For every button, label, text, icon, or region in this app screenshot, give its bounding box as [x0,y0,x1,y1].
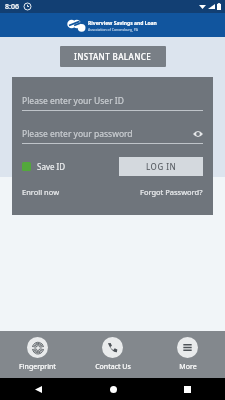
staticText: Contact Us [95,362,131,372]
staticText: Enroll now [22,187,60,197]
staticText: Fingerprint [19,362,56,372]
staticText: 8:06 [5,2,19,12]
button[interactable]: LOG IN [119,157,203,176]
button[interactable]: More [150,331,225,378]
staticText: Please enter your password [22,128,133,140]
button[interactable]: Home [105,381,121,397]
staticText: Riverview Savings and Loan [88,20,157,27]
button[interactable]: INSTANT BALANCE [60,46,166,67]
staticText: Forgot Password? [140,187,203,197]
button[interactable]: Back [30,381,46,397]
button[interactable]: Save ID [22,158,66,175]
staticText: More [179,362,197,372]
button[interactable]: Contact Us [75,331,150,378]
staticText: LOG IN [146,161,177,172]
staticText: INSTANT BALANCE [74,51,152,62]
other: Show password [193,129,203,139]
button[interactable]: Forgot Password? [140,187,203,197]
button[interactable]: Please enter your User ID [22,95,203,111]
button[interactable]: Recents [179,381,195,397]
staticText: Association of Canonsburg, PA [88,27,139,32]
staticText: Please enter your User ID [22,95,124,107]
staticText: Save ID [37,161,66,172]
button[interactable]: Enroll now [22,187,60,197]
button[interactable]: Please enter your password [22,128,203,144]
button[interactable]: Fingerprint [0,331,75,378]
